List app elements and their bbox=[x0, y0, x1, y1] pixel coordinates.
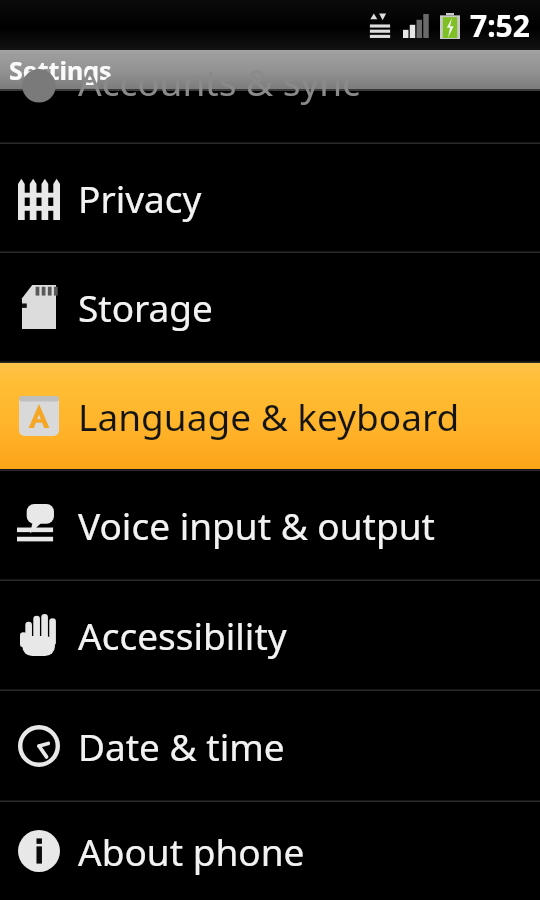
staticText: Storage bbox=[78, 282, 213, 332]
staticText: 7:52 bbox=[470, 5, 530, 46]
button[interactable]: Privacy bbox=[0, 144, 540, 251]
staticText: Date & time bbox=[78, 721, 285, 771]
button[interactable]: Date & time bbox=[0, 691, 540, 800]
button[interactable]: About phone bbox=[0, 802, 540, 900]
staticText: Language & keyboard bbox=[78, 391, 460, 441]
staticText: Voice input & output bbox=[78, 500, 435, 550]
button[interactable]: Accounts & sync bbox=[0, 55, 540, 106]
staticText: Privacy bbox=[78, 173, 202, 223]
button[interactable]: Language & keyboard bbox=[0, 363, 540, 469]
button[interactable]: Storage bbox=[0, 253, 540, 361]
staticText: Accessibility bbox=[78, 610, 287, 660]
staticText: Settings bbox=[9, 53, 112, 87]
button[interactable]: Voice input & output bbox=[0, 471, 540, 579]
staticText: About phone bbox=[78, 826, 305, 876]
button[interactable]: Accessibility bbox=[0, 581, 540, 689]
staticText: Accounts & sync bbox=[78, 56, 360, 106]
